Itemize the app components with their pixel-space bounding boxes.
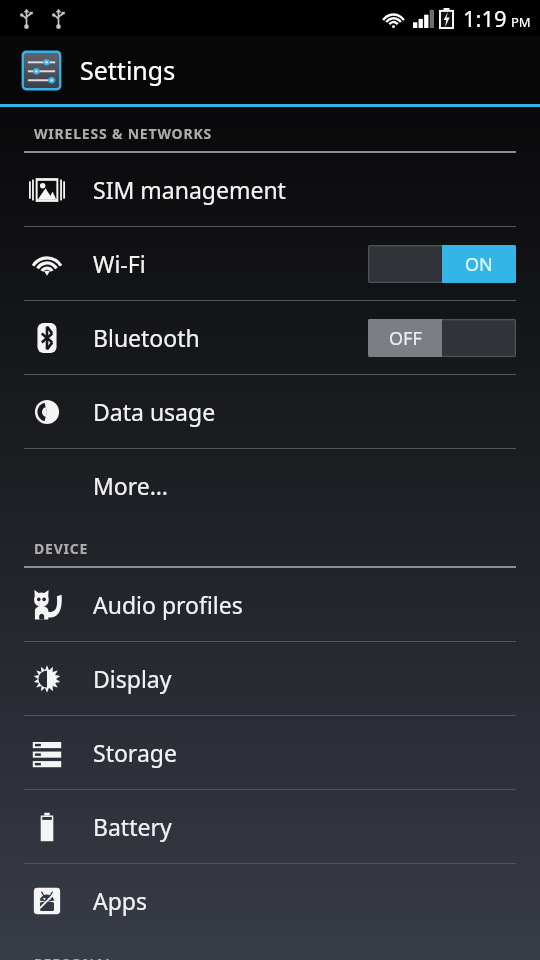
other: Data usage <box>29 394 65 430</box>
other: Wi-Fi <box>29 246 65 282</box>
button[interactable]: Battery <box>0 790 540 863</box>
button[interactable]: Bluetooth <box>0 301 540 374</box>
button[interactable]: Apps <box>0 864 540 937</box>
button[interactable]: Audio profiles <box>0 568 540 641</box>
other: Battery <box>29 809 65 845</box>
staticText: OFF <box>389 326 422 351</box>
staticText: PM <box>511 13 531 31</box>
staticText: Bluetooth <box>93 322 200 353</box>
staticText: Audio profiles <box>93 589 243 620</box>
other: Bluetooth <box>29 320 65 356</box>
other: Apps <box>29 883 65 919</box>
staticText: Battery <box>93 811 172 842</box>
staticText: Display <box>93 663 172 694</box>
other: SIM management <box>29 172 65 208</box>
staticText: Data usage <box>93 396 216 427</box>
button[interactable]: Data usage <box>0 375 540 448</box>
staticText: WIRELESS & NETWORKS <box>34 124 213 143</box>
button[interactable]: Display <box>0 642 540 715</box>
button[interactable]: SIM management <box>0 153 540 226</box>
staticText: 1:19 <box>463 3 507 33</box>
staticText: ON <box>465 252 493 277</box>
staticText: Storage <box>93 737 177 768</box>
staticText: Apps <box>93 885 148 916</box>
button[interactable]: Turn off <box>368 245 516 283</box>
other: Storage <box>29 735 65 771</box>
staticText: More… <box>93 470 168 501</box>
other: Display <box>29 661 65 697</box>
staticText: SIM management <box>93 174 286 205</box>
button[interactable]: Storage <box>0 716 540 789</box>
other: Audio profiles <box>29 587 65 623</box>
button[interactable]: Wi-Fi <box>0 227 540 300</box>
staticText: Settings <box>80 53 176 87</box>
staticText: PERSONAL <box>34 954 114 960</box>
staticText: DEVICE <box>34 539 89 558</box>
button[interactable]: Turn on <box>368 319 516 357</box>
button[interactable]: More… <box>0 449 540 522</box>
staticText: Wi-Fi <box>93 248 146 279</box>
